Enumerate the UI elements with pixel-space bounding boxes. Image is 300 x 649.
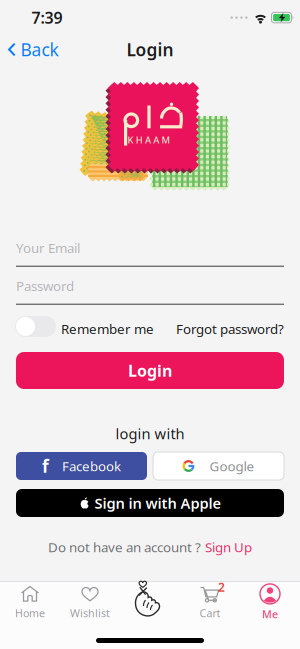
button[interactable]: Forgot password? (176, 320, 284, 338)
button[interactable]: Cart (199, 586, 220, 620)
staticText: 2 (218, 579, 225, 595)
button[interactable]: Home (15, 586, 45, 620)
staticText: A (145, 134, 151, 146)
staticText: Facebook (62, 457, 121, 475)
button[interactable]: Back (7, 38, 58, 61)
button[interactable]: Me (259, 583, 281, 621)
button[interactable]: Remember me (15, 316, 56, 337)
button[interactable]: Google (153, 452, 284, 480)
staticText: f (42, 454, 49, 477)
button[interactable]: Sign in with Apple (16, 489, 284, 517)
staticText: Forgot password? (176, 320, 284, 338)
staticText: M (161, 134, 170, 146)
button[interactable]: Password (16, 277, 284, 305)
button[interactable]: Wishlist (70, 586, 110, 620)
staticText: A (153, 134, 159, 146)
staticText: H (136, 134, 143, 146)
staticText: login with (115, 424, 184, 443)
staticText: Sign Up (205, 538, 252, 556)
staticText: Back (20, 38, 58, 61)
staticText: Password (16, 277, 74, 295)
staticText: K (128, 134, 134, 146)
staticText: Do not have an account ? (48, 538, 201, 556)
staticText: 7:39 (31, 7, 62, 28)
staticText: Login (128, 360, 172, 381)
button[interactable]: Login (16, 352, 284, 389)
staticText: Sign in with Apple (94, 493, 221, 513)
button[interactable]: Khaam (134, 580, 164, 618)
button[interactable]: Your Email (16, 239, 284, 267)
staticText: Home (15, 606, 45, 620)
button[interactable]: f (16, 452, 147, 480)
staticText: Google (209, 457, 254, 475)
staticText: Me (262, 607, 278, 621)
staticText: Login (126, 38, 173, 61)
staticText: Your Email (16, 239, 80, 257)
staticText: Wishlist (70, 606, 110, 620)
staticText: Remember me (61, 320, 154, 338)
staticText: Cart (199, 606, 220, 620)
button[interactable]: Sign Up (205, 538, 252, 556)
